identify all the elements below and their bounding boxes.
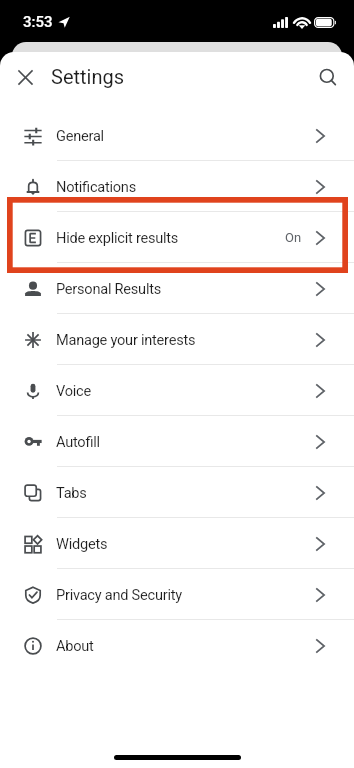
- button[interactable]: General: [0, 110, 354, 161]
- button[interactable]: Close: [9, 61, 41, 93]
- button[interactable]: Autofill: [0, 416, 354, 467]
- staticText: Privacy and Security: [56, 586, 182, 603]
- button[interactable]: Widgets: [0, 518, 354, 569]
- staticText: On: [285, 230, 302, 245]
- staticText: About: [56, 637, 94, 654]
- button[interactable]: Notifications: [0, 161, 354, 212]
- staticText: Manage your interests: [56, 331, 196, 348]
- button[interactable]: Manage your interests: [0, 314, 354, 365]
- staticText: Widgets: [56, 535, 108, 552]
- staticText: General: [56, 127, 104, 144]
- staticText: Voice: [56, 382, 91, 399]
- button[interactable]: About: [0, 620, 354, 671]
- button[interactable]: Personal Results: [0, 263, 354, 314]
- button[interactable]: Tabs: [0, 467, 354, 518]
- button[interactable]: Hide explicit results: [0, 212, 354, 263]
- staticText: Hide explicit results: [56, 229, 179, 246]
- button[interactable]: Search: [312, 61, 344, 93]
- staticText: Tabs: [56, 484, 87, 501]
- staticText: Personal Results: [56, 280, 161, 297]
- staticText: 3:53: [23, 13, 53, 31]
- button[interactable]: Voice: [0, 365, 354, 416]
- staticText: Notifications: [56, 178, 136, 195]
- staticText: Autofill: [56, 433, 100, 450]
- button[interactable]: Privacy and Security: [0, 569, 354, 620]
- staticText: Settings: [51, 65, 125, 88]
